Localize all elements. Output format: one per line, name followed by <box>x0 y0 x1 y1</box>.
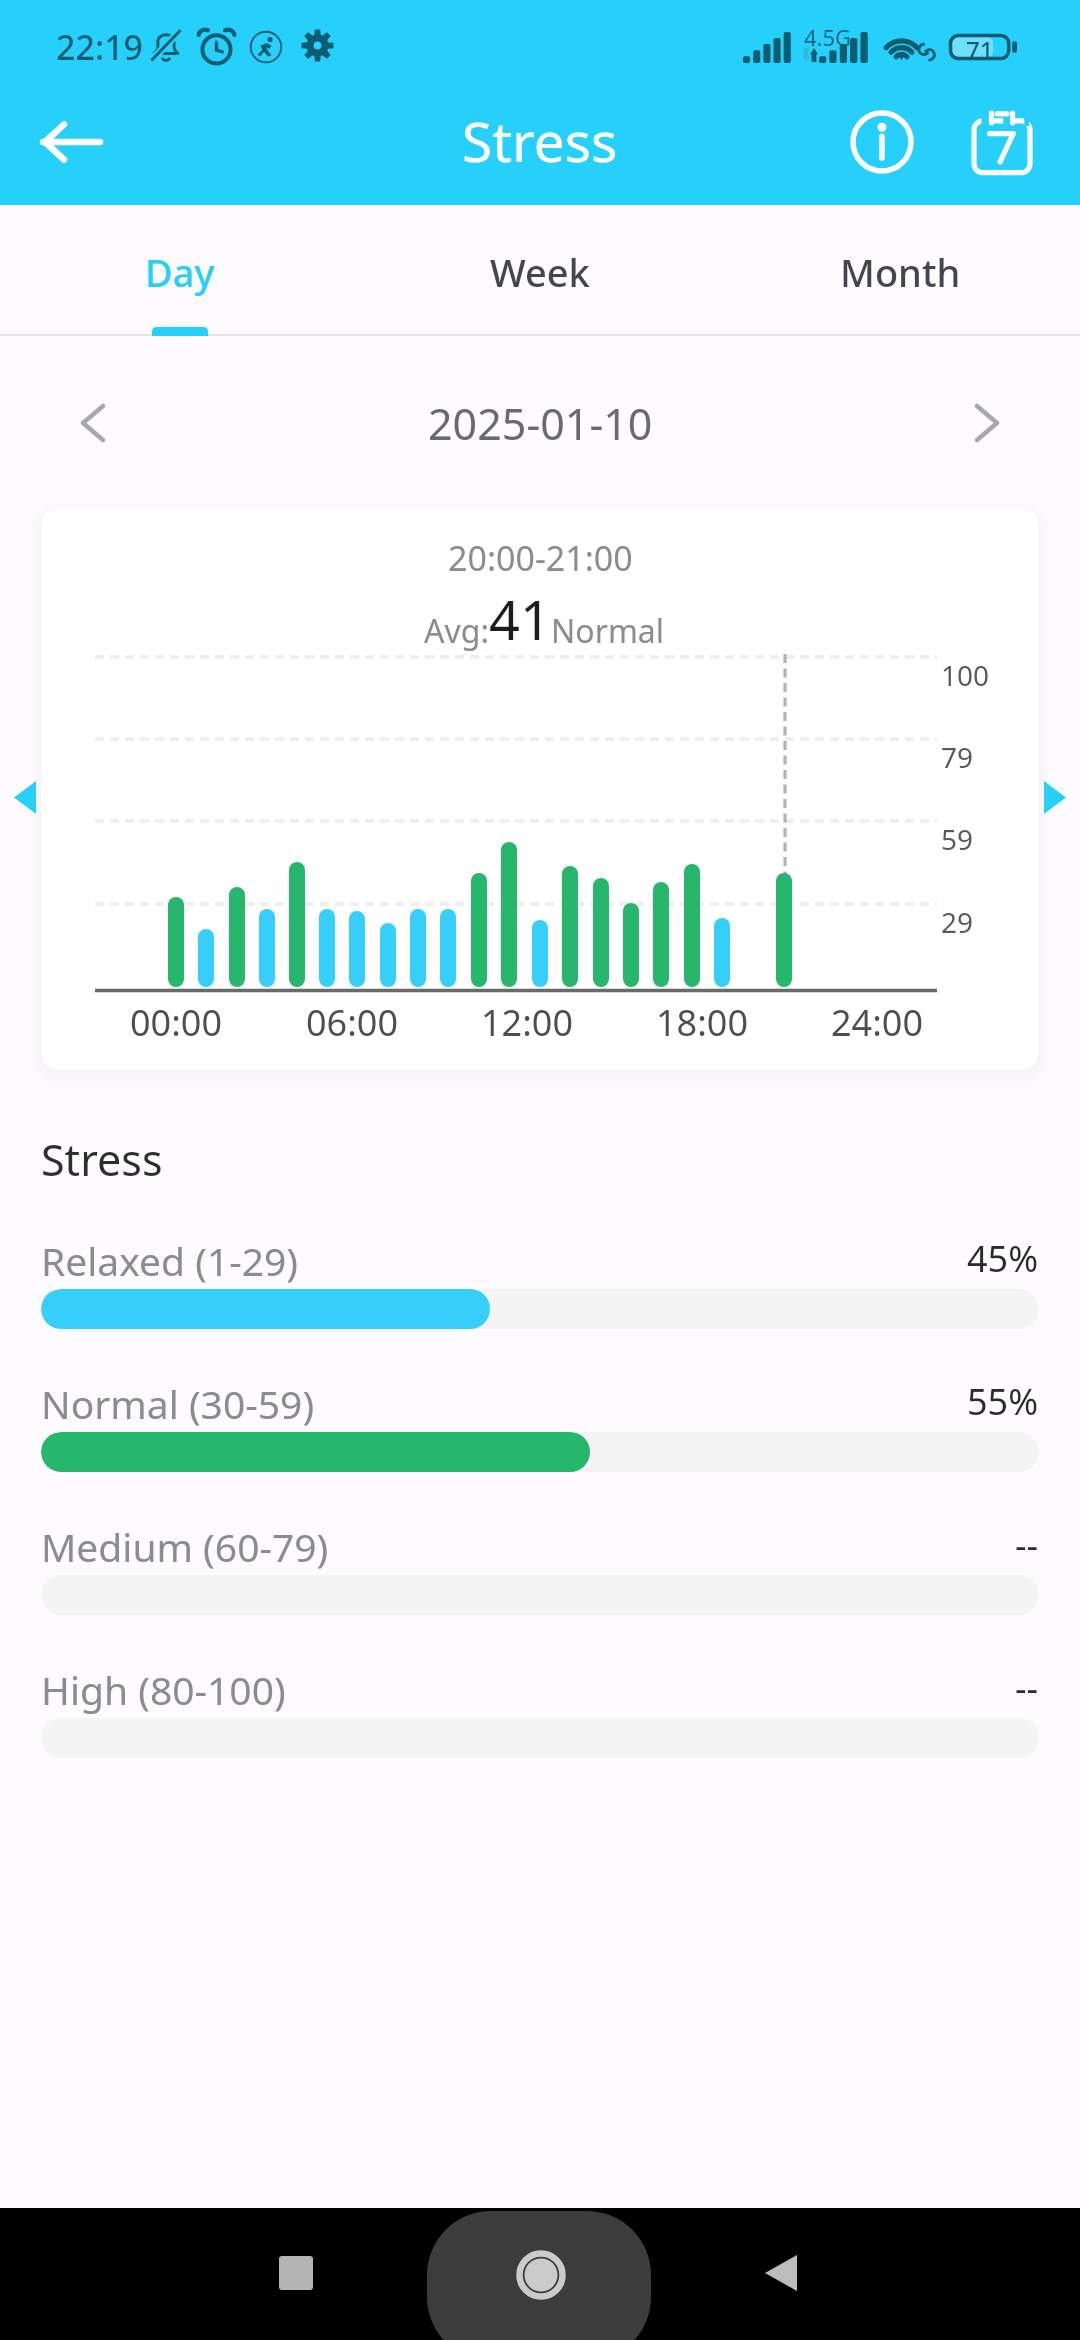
staticText: Relaxed (1-29) <box>41 1234 299 1287</box>
staticText: Stress <box>41 1130 163 1189</box>
button[interactable]: Week <box>360 205 720 336</box>
button[interactable]: Back <box>26 97 116 187</box>
staticText: 18:00 <box>656 998 749 1047</box>
button[interactable] <box>41 1289 1039 1329</box>
staticText: Medium (60-79) <box>41 1520 329 1573</box>
button[interactable] <box>41 1432 1039 1472</box>
button[interactable]: Next day <box>947 383 1027 463</box>
button[interactable]: Back <box>741 2233 821 2313</box>
staticText: 4.5G <box>804 22 852 52</box>
staticText: 59 <box>941 820 974 858</box>
button[interactable]: Calendar <box>957 97 1047 187</box>
button[interactable]: Info <box>837 97 927 187</box>
staticText: 45% <box>967 1234 1039 1283</box>
button[interactable]: Day <box>0 205 360 336</box>
staticText: 29 <box>941 903 974 941</box>
button[interactable]: Recents <box>256 2233 336 2313</box>
staticText: 00:00 <box>130 998 223 1047</box>
staticText: 71 <box>966 33 994 59</box>
staticText: -- <box>1015 1520 1039 1569</box>
staticText: Week <box>490 246 590 298</box>
staticText: Stress <box>462 103 618 178</box>
staticText: 24:00 <box>831 998 924 1047</box>
staticText: Normal <box>551 609 665 653</box>
button[interactable]: Previous day <box>53 383 133 463</box>
staticText: 100 <box>941 656 990 694</box>
staticText: Month <box>840 246 961 298</box>
button[interactable]: Month <box>720 205 1080 336</box>
staticText: 20:00-21:00 <box>448 535 633 581</box>
staticText: -- <box>1015 1663 1039 1712</box>
staticText: Avg: <box>424 609 489 653</box>
staticText: 55% <box>967 1377 1039 1426</box>
staticText: Normal (30-59) <box>41 1377 315 1430</box>
staticText: 79 <box>941 738 974 776</box>
staticText: 12:00 <box>481 998 574 1047</box>
staticText: High (80-100) <box>41 1663 286 1716</box>
staticText: 06:00 <box>306 998 399 1047</box>
staticText: 41 <box>489 582 551 656</box>
staticText: 2025-01-10 <box>428 394 653 453</box>
staticText: 22:19 <box>56 24 144 70</box>
button[interactable]: Home <box>427 2211 651 2340</box>
staticText: Day <box>145 246 215 298</box>
